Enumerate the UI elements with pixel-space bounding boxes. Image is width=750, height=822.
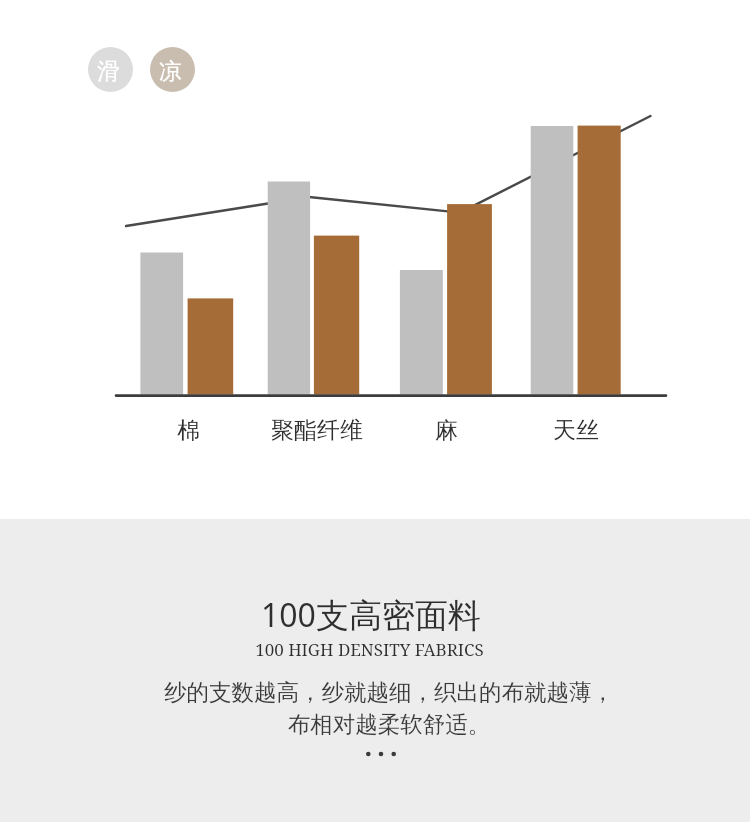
staticText: 纱的支数越高，纱就越细，织出的布就越薄， 布相对越柔软舒适。	[164, 678, 614, 739]
staticText: 麻	[435, 416, 458, 445]
button[interactable]: 滑	[88, 47, 133, 92]
staticText: 100 HIGH DENSITY FABRICS	[255, 638, 484, 661]
staticText: 滑	[97, 57, 120, 86]
staticText: 100	[261, 593, 316, 637]
staticText: 凉	[159, 57, 182, 86]
staticText: 棉	[177, 416, 200, 445]
staticText: 支高密面料	[316, 595, 481, 637]
staticText: 聚酯纤维	[271, 416, 363, 445]
staticText: 天丝	[553, 416, 599, 445]
other: Fabric comparison chart	[0, 0, 750, 519]
button[interactable]: 凉	[150, 47, 195, 92]
